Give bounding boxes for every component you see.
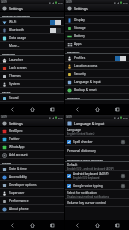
button[interactable]: Language & input (65, 78, 129, 86)
button[interactable]: Settings (65, 4, 129, 12)
button[interactable]: Launcher (0, 56, 64, 64)
button[interactable]: Toggle (115, 56, 126, 61)
button[interactable]: Twitter (0, 135, 64, 143)
staticText: Settings (9, 6, 23, 11)
button[interactable]: More... (0, 42, 64, 50)
staticText: Lock screen (9, 66, 27, 70)
staticText: 67% (58, 116, 63, 119)
button[interactable]: Volume key cursor control (65, 199, 129, 207)
staticText: Select for notification (67, 191, 97, 195)
staticText: 3:09 (66, 115, 72, 119)
staticText: Spell checker (73, 140, 93, 144)
staticText: 67% (123, 116, 128, 119)
button[interactable]: Display (65, 16, 129, 24)
button[interactable]: Lock screen (0, 64, 64, 72)
button[interactable]: Home (89, 104, 105, 114)
staticText: 67% (58, 1, 63, 4)
staticText: Profiles (74, 56, 86, 60)
button[interactable]: Date & time (0, 165, 64, 173)
staticText: Wi-Fi (9, 20, 17, 24)
staticText: INTERFACE (2, 52, 15, 55)
button[interactable]: Recents (44, 104, 60, 114)
button[interactable]: Accessibility (0, 173, 64, 181)
button[interactable]: RedOpro (0, 127, 64, 135)
staticText: English (US) - android keyboard (AOSP) (67, 167, 114, 171)
button[interactable]: Settings (0, 119, 64, 127)
staticText: Security (74, 72, 86, 76)
button[interactable]: Default (65, 162, 129, 171)
button[interactable]: Themes (0, 72, 64, 80)
button[interactable]: Wi-Fi (0, 18, 64, 26)
button[interactable]: Back (69, 104, 85, 114)
button[interactable]: Settings (0, 4, 64, 12)
button[interactable]: Security (65, 70, 129, 78)
button[interactable]: Profiles (65, 54, 129, 62)
button[interactable]: Toggle (50, 20, 61, 25)
button[interactable]: Location access (65, 62, 129, 70)
button[interactable]: Checkbox (67, 174, 71, 178)
staticText: Language (67, 128, 82, 132)
button[interactable]: Home (24, 104, 40, 114)
button[interactable]: Recents (109, 104, 125, 114)
button[interactable]: Language (65, 127, 129, 137)
staticText: 3:09 (1, 0, 7, 4)
button[interactable]: Language & input (65, 119, 129, 127)
staticText: Language & input (74, 121, 105, 126)
button[interactable]: WhatsApp (0, 143, 64, 151)
staticText: 3:09 (1, 115, 7, 119)
button[interactable]: Settings (120, 183, 126, 189)
staticText: Sound (9, 96, 19, 100)
button[interactable]: Apps (65, 40, 129, 48)
button[interactable]: Back (4, 104, 20, 114)
staticText: Accessibility (9, 175, 27, 179)
button[interactable]: Add account (0, 151, 64, 159)
staticText: System (9, 82, 20, 86)
button[interactable]: Superuser (0, 189, 64, 197)
staticText: Data usage (9, 36, 26, 40)
button[interactable]: Back (69, 220, 85, 230)
staticText: English (United States) (67, 132, 95, 136)
button[interactable]: Bluetooth (0, 26, 64, 34)
staticText: Battery (74, 34, 85, 38)
button[interactable]: Settings (120, 139, 126, 145)
button[interactable]: Battery (65, 32, 129, 40)
staticText: More... (9, 44, 20, 48)
button[interactable]: Checkbox (65, 171, 129, 181)
button[interactable]: System (0, 80, 64, 88)
staticText: Settings (74, 6, 88, 11)
staticText: Default (67, 163, 78, 167)
button[interactable]: Settings (120, 173, 126, 179)
staticText: DEVICE (2, 90, 11, 93)
staticText: WIRELESS & NETWORKS (2, 14, 30, 17)
button[interactable]: About phone (0, 205, 64, 213)
button[interactable]: Checkbox (65, 181, 129, 190)
button[interactable]: Backup & reset (65, 86, 129, 94)
button[interactable]: Developer options (0, 181, 64, 189)
staticText: Google voice typing (73, 184, 103, 188)
button[interactable]: Storage (65, 24, 129, 32)
staticText: Superuser (9, 191, 25, 195)
staticText: Apps (74, 42, 82, 46)
button[interactable]: Sound (0, 94, 64, 102)
button[interactable]: Toggle (50, 28, 61, 33)
button[interactable]: Home (89, 220, 105, 230)
staticText: Performance (9, 199, 29, 203)
staticText: SYSTEM (2, 161, 12, 164)
button[interactable]: Select for notification (65, 190, 129, 199)
button[interactable]: Performance (0, 197, 64, 205)
staticText: Personal dictionary (67, 149, 96, 153)
button[interactable]: Recents (109, 220, 125, 230)
button[interactable]: Checkbox (67, 140, 71, 144)
button[interactable]: Home (24, 220, 40, 230)
button[interactable]: Recents (44, 220, 60, 230)
button[interactable]: Checkbox (67, 184, 71, 188)
button[interactable]: Data usage (0, 34, 64, 42)
button[interactable]: Back (4, 220, 20, 230)
staticText: RedOpro (9, 129, 23, 133)
staticText: 67% (123, 1, 128, 4)
button[interactable]: Checkbox (65, 137, 129, 146)
staticText: Add account (9, 153, 28, 157)
staticText: KEYBOARD & INPUT METHODS (67, 158, 103, 161)
button[interactable]: Personal dictionary (65, 146, 129, 156)
staticText: About phone (9, 207, 29, 211)
